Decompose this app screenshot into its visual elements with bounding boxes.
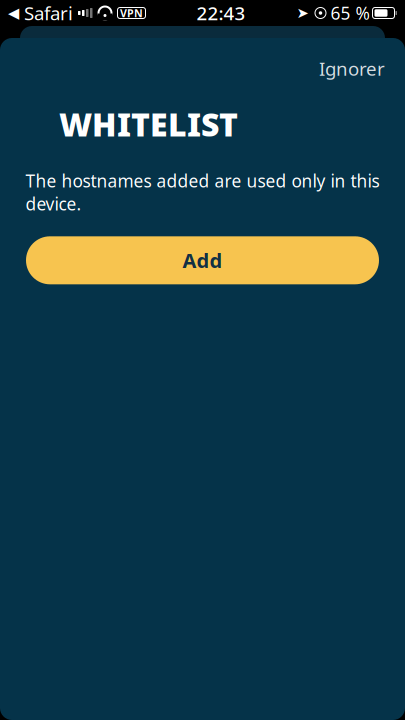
staticText: Ignorer [319, 56, 385, 81]
button[interactable]: Add [26, 236, 379, 284]
staticText: Safari [19, 1, 73, 25]
staticText: The hostnames added are used only in thi… [25, 169, 379, 215]
staticText: ➤ [296, 5, 308, 21]
button[interactable]: Ignorer [307, 48, 397, 89]
staticText: VPN [120, 6, 143, 20]
staticText: ◀ [8, 5, 19, 21]
staticText: Add [182, 247, 222, 274]
staticText: 22:43 [196, 1, 245, 25]
staticText: WHITELIST [59, 103, 238, 145]
staticText: 65 % [330, 1, 369, 24]
